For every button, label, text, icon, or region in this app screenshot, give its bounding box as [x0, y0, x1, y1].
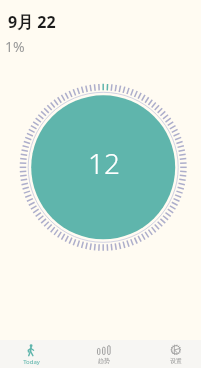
staticText: 设置	[170, 357, 182, 365]
staticText: 1%	[5, 37, 25, 56]
button[interactable]: Trends	[80, 344, 128, 368]
button[interactable]: Today	[7, 344, 55, 368]
staticText: Today	[23, 358, 40, 366]
staticText: 9月 22	[8, 11, 56, 33]
staticText: 12	[88, 144, 120, 182]
button[interactable]: Settings	[152, 344, 200, 368]
staticText: 趋势	[98, 357, 110, 365]
